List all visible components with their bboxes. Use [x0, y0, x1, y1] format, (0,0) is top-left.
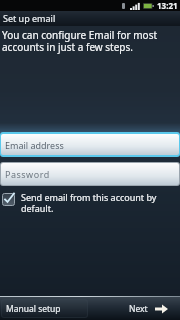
staticText: Email address [5, 139, 64, 151]
staticText: Password [5, 168, 50, 180]
button[interactable]: Password [1, 163, 179, 185]
staticText: Send email from this account by default. [21, 191, 157, 214]
staticText: You can configure Email for most account… [2, 28, 158, 54]
button[interactable]: Next [92, 299, 169, 318]
staticText: 13:21 [157, 0, 178, 11]
staticText: Manual setup [6, 303, 61, 315]
staticText: Set up email [3, 12, 56, 24]
button[interactable]: Email address [1, 134, 179, 155]
staticText: Next [129, 303, 148, 315]
button[interactable]: Send email from this account by default. [2, 191, 157, 214]
button[interactable]: Manual setup [2, 300, 87, 317]
